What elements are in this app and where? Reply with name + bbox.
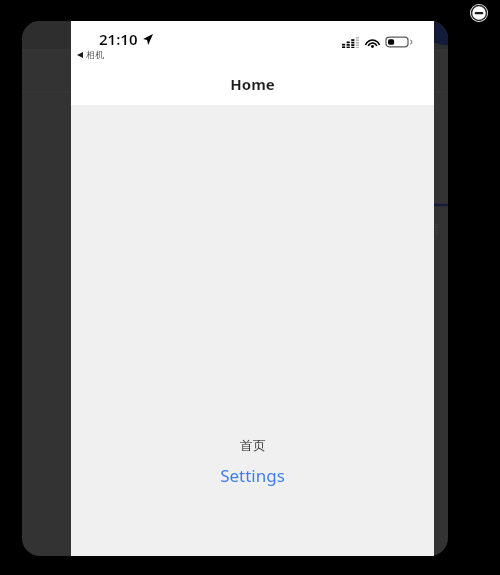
button[interactable]: Minimize [470, 4, 488, 22]
staticText: 21:10 [99, 29, 138, 49]
staticText: Home [230, 74, 275, 94]
staticText: 首页 [240, 437, 266, 453]
button[interactable]: Settings [210, 462, 295, 489]
staticText: Settings [220, 464, 285, 487]
button[interactable]: 相机 [74, 48, 107, 61]
staticText: 相机 [86, 49, 104, 60]
